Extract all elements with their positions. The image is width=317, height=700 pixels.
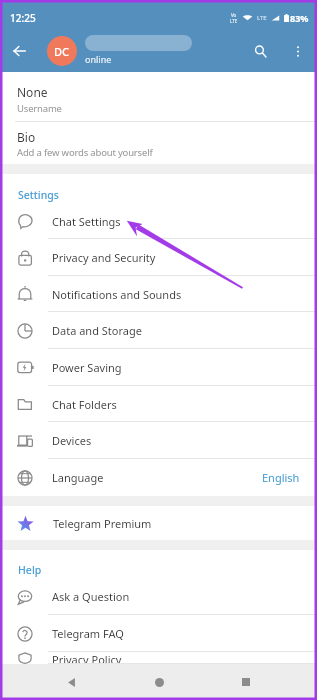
button[interactable]: Bio [0, 122, 317, 164]
staticText: online [85, 53, 112, 65]
staticText: Settings [18, 188, 59, 202]
staticText: Chat Folders [52, 397, 117, 412]
staticText: 83% [290, 12, 309, 24]
button[interactable]: Power Saving [0, 349, 317, 386]
button[interactable]: Chat Folders [0, 386, 317, 422]
staticText: None [17, 84, 48, 100]
button[interactable]: Home [143, 666, 175, 698]
staticText: Chat Settings [52, 214, 121, 229]
button[interactable]: None [0, 72, 317, 122]
button[interactable]: More options [279, 32, 317, 70]
button[interactable]: Recents [230, 666, 262, 698]
button[interactable]: Ask a Question [0, 578, 317, 615]
staticText: LTE [257, 14, 267, 22]
staticText: Language [52, 470, 104, 485]
staticText: Vo [231, 12, 237, 18]
button[interactable]: Data and Storage [0, 312, 317, 349]
button[interactable]: Privacy Policy [0, 652, 317, 664]
button[interactable]: Telegram Premium [0, 506, 317, 540]
staticText: Notifications and Sounds [52, 287, 182, 302]
staticText: Ask a Question [52, 589, 130, 604]
staticText: Privacy Policy [52, 652, 122, 664]
staticText: Data and Storage [52, 323, 142, 338]
button[interactable]: Notifications and Sounds [0, 276, 317, 312]
staticText: DC [54, 44, 70, 59]
staticText: Telegram Premium [53, 516, 152, 531]
button[interactable]: Telegram FAQ [0, 615, 317, 652]
button[interactable]: Search [241, 32, 279, 70]
button[interactable]: Language [0, 459, 317, 496]
button[interactable]: Chat Settings [0, 203, 317, 239]
staticText: Username [17, 102, 62, 115]
staticText: LTE [230, 18, 238, 24]
staticText: Power Saving [52, 360, 122, 375]
button[interactable]: Back [55, 666, 87, 698]
staticText: Telegram FAQ [52, 626, 124, 641]
staticText: Privacy and Security [52, 250, 156, 265]
staticText: Bio [17, 129, 36, 145]
staticText: Devices [52, 433, 92, 448]
button[interactable]: Privacy and Security [0, 239, 317, 276]
button[interactable]: DC [47, 36, 77, 66]
staticText: Add a few words about yourself [17, 146, 153, 159]
staticText: Help [18, 563, 42, 577]
staticText: English [262, 470, 300, 485]
button[interactable]: Back [0, 32, 38, 70]
staticText: 12:25 [10, 11, 36, 25]
button[interactable]: Devices [0, 422, 317, 459]
